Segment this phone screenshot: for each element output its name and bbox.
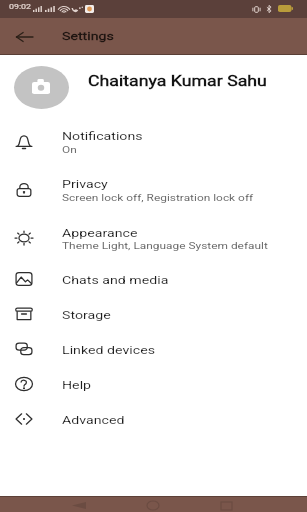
button[interactable]: Back — [60, 496, 100, 512]
staticText: Storage — [62, 309, 111, 322]
button[interactable] — [0, 301, 307, 336]
staticText: Privacy — [62, 178, 109, 191]
staticText: Linked devices — [62, 344, 156, 357]
staticText: Screen lock off, Registration lock off — [62, 192, 253, 203]
staticText: Chaitanya Kumar Sahu — [88, 73, 268, 89]
button[interactable] — [0, 167, 307, 215]
staticText: Help — [62, 379, 91, 392]
button[interactable] — [0, 215, 307, 263]
staticText: On — [62, 144, 77, 155]
staticText: Appearance — [62, 227, 138, 240]
staticText: 09:02 — [9, 3, 32, 11]
button[interactable] — [0, 58, 307, 115]
staticText: Theme Light, Language System default — [62, 240, 268, 251]
staticText: Settings — [62, 30, 114, 43]
button[interactable]: Back — [8, 19, 41, 54]
button[interactable] — [0, 406, 307, 441]
button[interactable] — [0, 371, 307, 406]
button[interactable] — [0, 119, 307, 167]
staticText: Advanced — [62, 414, 125, 427]
button[interactable] — [0, 266, 307, 301]
button[interactable]: Recent apps — [208, 496, 248, 512]
button[interactable]: Home — [134, 496, 174, 512]
staticText: Chats and media — [62, 274, 168, 287]
staticText: Notifications — [62, 130, 143, 143]
button[interactable] — [0, 336, 307, 371]
